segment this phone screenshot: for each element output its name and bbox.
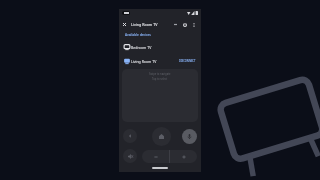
button[interactable]: Mute [123,149,137,163]
button[interactable]: Home [152,127,171,146]
staticText: Bedroom TV [131,45,152,50]
staticText: Swipe to navigate [149,72,171,76]
button[interactable]: Volume up [170,150,197,163]
staticText: Tap to select [152,77,168,81]
staticText: Living Room TV [131,22,158,27]
button[interactable]: Living Room TV [119,54,201,68]
staticText: Living Room TV [131,59,157,64]
button[interactable]: More options [189,20,198,29]
button[interactable]: Keyboard [171,20,180,29]
button[interactable]: Close [120,20,129,29]
button[interactable]: Power [180,20,189,29]
button[interactable]: Voice search [182,129,197,144]
staticText: DISCONNECT [179,59,196,63]
button[interactable]: Back [123,129,137,143]
staticText: Available devices [125,33,151,37]
button[interactable]: Volume down [142,150,169,163]
button[interactable]: DISCONNECT [179,59,196,63]
button[interactable]: Bedroom TV [119,40,201,54]
